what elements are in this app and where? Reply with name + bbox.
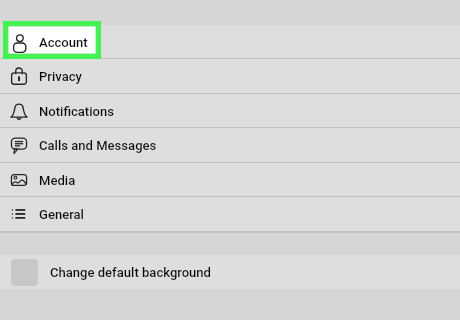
staticText: Notifications [39, 104, 114, 119]
staticText: Account [39, 35, 88, 50]
button[interactable]: Change default background [0, 255, 460, 289]
button[interactable]: Privacy [0, 59, 460, 93]
other: Account [10, 34, 28, 52]
staticText: Change default background [50, 265, 211, 280]
button[interactable]: Media [0, 163, 460, 197]
other: Notifications [10, 102, 28, 120]
button[interactable]: Account [0, 25, 460, 60]
other: General [10, 206, 28, 224]
button[interactable]: Notifications [0, 94, 460, 128]
other: Privacy [10, 67, 28, 85]
other: Calls and Messages [10, 136, 28, 154]
staticText: General [39, 207, 84, 222]
staticText: Media [39, 173, 76, 188]
other: Media [10, 171, 28, 189]
staticText: Calls and Messages [39, 138, 157, 153]
staticText: Privacy [39, 69, 82, 84]
button[interactable]: General [0, 197, 460, 232]
staticText: Account [39, 35, 88, 50]
other: Account [10, 34, 28, 52]
button[interactable]: Calls and Messages [0, 128, 460, 162]
